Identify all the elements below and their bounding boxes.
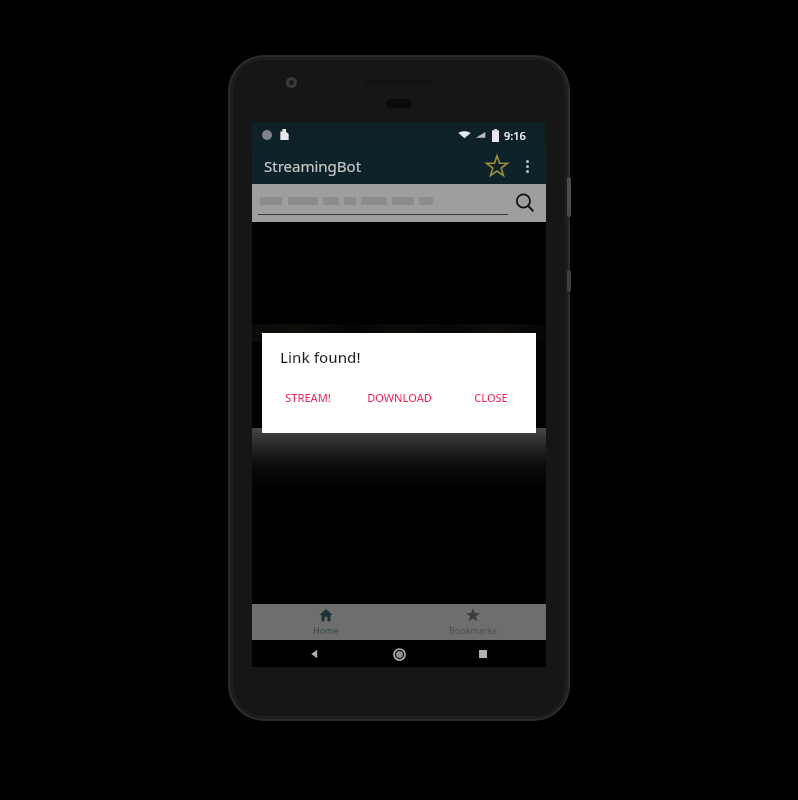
staticText: 9:16 (504, 128, 526, 143)
staticText: CLOSE (474, 390, 508, 405)
staticText: Link found! (280, 347, 361, 367)
staticText: STREAM! (285, 390, 331, 405)
staticText: StreamingBot (264, 156, 362, 176)
button[interactable]: CLOSE (445, 383, 536, 411)
button[interactable]: Back (304, 643, 326, 665)
button[interactable]: Home (387, 642, 411, 666)
button[interactable]: Recent apps (472, 643, 494, 665)
staticText: Bookmarks (449, 624, 497, 636)
button[interactable]: DOWNLOAD (354, 383, 445, 411)
button[interactable]: Search (510, 188, 540, 218)
button[interactable] (260, 197, 433, 205)
staticText: DOWNLOAD (367, 390, 432, 405)
staticText: Home (313, 624, 339, 636)
button[interactable]: Bookmarks (399, 604, 546, 640)
button[interactable]: Bookmark (482, 151, 512, 181)
button[interactable]: More options (512, 151, 542, 181)
button[interactable]: Home (252, 604, 399, 640)
button[interactable]: STREAM! (262, 383, 354, 411)
